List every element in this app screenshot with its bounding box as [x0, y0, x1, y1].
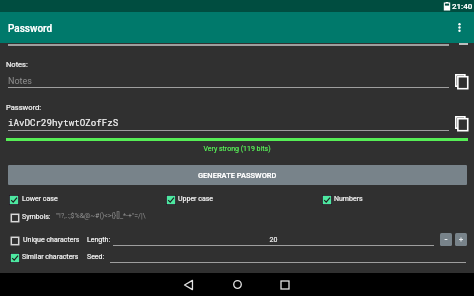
staticText: Length: [87, 236, 111, 244]
button[interactable]: More options [449, 17, 470, 38]
button[interactable]: GENERATE PASSWORD [8, 165, 467, 185]
staticText: Similar characters [22, 253, 79, 261]
staticText: Notes: [6, 60, 28, 69]
button[interactable]: Increase [455, 233, 467, 246]
button[interactable]: Recents [264, 273, 306, 296]
button[interactable]: Back [168, 273, 210, 296]
staticText: GENERATE PASSWORD [198, 171, 277, 180]
staticText: "'!?,.:;$%&@~#()<>{}[]_*-+"=/|\ [56, 212, 146, 220]
staticText: Password [8, 23, 53, 35]
button[interactable]: Decrease [440, 233, 452, 246]
staticText: Unique characters [23, 236, 80, 244]
staticText: iAvDCr29hytwtOZofFzS [8, 116, 119, 128]
button[interactable] [7, 210, 56, 226]
button[interactable] [7, 233, 82, 249]
staticText: 21:40 [452, 2, 473, 11]
staticText: Notes [8, 76, 32, 87]
staticText: Symbols: [22, 213, 51, 221]
button[interactable] [6, 192, 154, 208]
staticText: 20 [113, 236, 434, 244]
staticText: Very strong (119 bits) [0, 145, 474, 153]
staticText: Numbers [334, 195, 363, 203]
button[interactable]: Copy [453, 72, 471, 90]
staticText: Lower case [22, 195, 58, 203]
button[interactable] [319, 192, 462, 208]
button[interactable]: Home [216, 273, 258, 296]
button[interactable]: Copy [453, 114, 471, 132]
staticText: Password: [6, 103, 41, 112]
staticText: Seed: [87, 253, 105, 261]
staticText: Upper case [178, 195, 214, 203]
button[interactable] [163, 192, 311, 208]
button[interactable] [7, 250, 82, 266]
